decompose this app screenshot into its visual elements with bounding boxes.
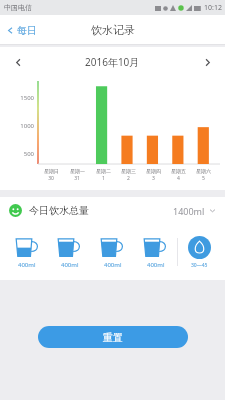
button[interactable]: Custom amount xyxy=(178,236,221,269)
button[interactable]: Next month xyxy=(197,52,217,72)
staticText: 5 xyxy=(202,175,205,182)
staticText: 400ml xyxy=(147,261,165,269)
button[interactable]: Add 400 ml xyxy=(91,235,134,269)
staticText: 3 xyxy=(152,175,155,182)
staticText: 1000 xyxy=(20,122,34,130)
staticText: 400ml xyxy=(104,261,122,269)
button[interactable]: Add 400 ml xyxy=(6,235,48,269)
staticText: 30 xyxy=(48,175,54,182)
button[interactable]: Add 400 ml xyxy=(48,235,91,269)
staticText: 饮水记录 xyxy=(91,23,135,37)
button[interactable]: 每日 xyxy=(0,17,47,44)
staticText: 每日 xyxy=(17,24,37,37)
staticText: 重置 xyxy=(103,331,123,344)
staticText: 星期日 xyxy=(44,168,59,174)
staticText: 400ml xyxy=(61,261,79,269)
staticText: 10:12 xyxy=(204,3,222,13)
staticText: 400ml xyxy=(18,261,36,269)
staticText: 1500 xyxy=(20,94,34,102)
staticText: 星期五 xyxy=(171,168,186,174)
button[interactable]: 今日饮水总量 xyxy=(0,197,225,224)
button[interactable]: Previous month xyxy=(8,52,28,72)
staticText: 30—45 xyxy=(191,262,208,269)
staticText: 星期二 xyxy=(96,168,111,174)
staticText: 1400ml xyxy=(173,205,205,217)
button[interactable]: 重置 xyxy=(38,326,188,348)
staticText: 2016年10月 xyxy=(85,55,140,69)
button[interactable]: Add 400 ml xyxy=(134,235,177,269)
staticText: 4 xyxy=(177,175,180,182)
staticText: 星期三 xyxy=(121,168,136,174)
staticText: 今日饮水总量 xyxy=(29,204,89,217)
staticText: 中国电信 xyxy=(4,3,32,12)
staticText: 31 xyxy=(74,175,80,182)
staticText: 1 xyxy=(102,175,105,182)
staticText: 500 xyxy=(23,150,34,158)
staticText: 2 xyxy=(127,175,130,182)
staticText: 星期一 xyxy=(70,168,85,174)
staticText: 星期四 xyxy=(146,168,161,174)
staticText: 星期六 xyxy=(196,168,211,174)
